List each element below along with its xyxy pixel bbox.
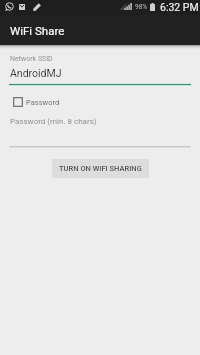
staticText: WiFi Share — [10, 24, 65, 37]
button[interactable]: TURN ON WIFI SHARING — [52, 159, 149, 178]
staticText: TURN ON WIFI SHARING — [59, 164, 142, 173]
staticText: Password — [26, 98, 60, 107]
staticText: AndroidMJ — [10, 67, 62, 79]
staticText: Password (min. 8 chars) — [10, 117, 97, 126]
button[interactable]: Password — [13, 97, 60, 107]
staticText: 98% — [135, 3, 148, 11]
staticText: 6:32 PM — [160, 1, 199, 13]
staticText: Network SSID — [10, 55, 53, 63]
